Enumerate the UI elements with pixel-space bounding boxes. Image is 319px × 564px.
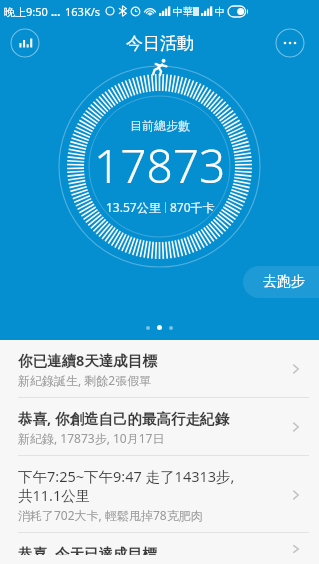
button[interactable]: Statistics bbox=[10, 28, 40, 58]
staticText: 新紀錄誕生, 剩餘2張假單 bbox=[18, 372, 152, 388]
staticText: 163K/s bbox=[65, 4, 101, 19]
staticText: 去跑步 bbox=[263, 273, 305, 291]
staticText: 新紀錄, 17873步, 10月17日 bbox=[18, 430, 165, 446]
staticText: 目前總步數 bbox=[130, 118, 190, 133]
staticText: 中華 bbox=[173, 5, 193, 18]
staticText: 消耗了702大卡, 輕鬆甩掉78克肥肉 bbox=[18, 507, 203, 523]
button[interactable]: More options bbox=[275, 28, 305, 58]
button[interactable]: 恭喜, 今天已達成目標 bbox=[0, 533, 319, 564]
staticText: 下午7:25~下午9:47 走了14313步, 共11.1公里 bbox=[18, 466, 235, 505]
staticText: 13.57公里 bbox=[106, 199, 161, 215]
button[interactable]: 恭喜, 你創造自己的最高行走紀錄 bbox=[0, 398, 319, 455]
staticText: 中 bbox=[215, 5, 225, 18]
staticText: 晚上9:50 bbox=[4, 4, 48, 19]
staticText: 17873 bbox=[94, 134, 226, 197]
staticText: 870千卡 bbox=[170, 199, 215, 215]
button[interactable]: 去跑步 bbox=[243, 266, 319, 298]
staticText: 你已連續8天達成目標 bbox=[18, 350, 157, 370]
staticText: 恭喜, 你創造自己的最高行走紀錄 bbox=[18, 408, 229, 428]
staticText: 今日活動 bbox=[126, 33, 194, 54]
staticText: ... bbox=[51, 4, 61, 19]
button[interactable]: 你已連續8天達成目標 bbox=[0, 340, 319, 397]
button[interactable]: 下午7:25~下午9:47 走了14313步, 共11.1公里 bbox=[0, 456, 319, 532]
staticText: 恭喜, 今天已達成目標 bbox=[18, 543, 157, 555]
